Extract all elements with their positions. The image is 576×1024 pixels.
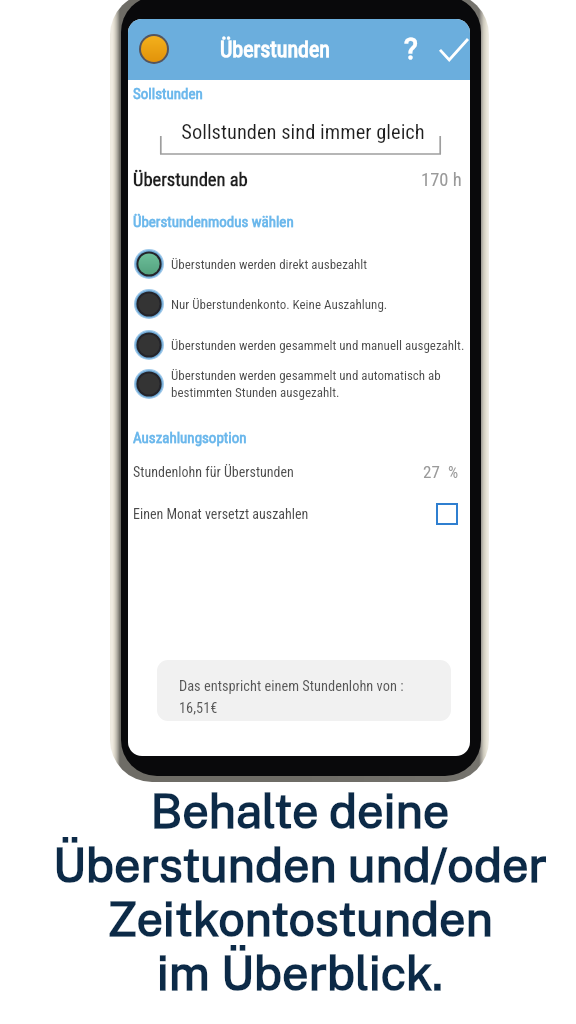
staticText: 170 h	[421, 169, 462, 191]
staticText: Überstunden werden gesammelt und automat…	[171, 368, 441, 401]
staticText: Überstundenmodus wählen	[133, 213, 294, 231]
staticText: Behalte deine Überstunden und/oder Zeitk…	[12, 783, 576, 1000]
button[interactable]: Stundenlohn für Überstunden	[128, 460, 470, 484]
button[interactable]: Save	[435, 30, 470, 68]
button[interactable]: Help	[391, 29, 431, 69]
button[interactable]: Nur Überstundenkonto. Keine Auszahlung.	[128, 287, 470, 321]
button[interactable]: Überstunden werden direkt ausbezahlt	[128, 247, 470, 281]
staticText: Nur Überstundenkonto. Keine Auszahlung.	[171, 297, 388, 312]
staticText: %	[448, 463, 459, 482]
staticText: ?	[404, 32, 418, 66]
staticText: 27	[423, 462, 440, 482]
button[interactable]: Profile	[139, 34, 169, 64]
staticText: Sollstunden	[133, 85, 203, 103]
staticText: Das entspricht einem Stundenlohn von : 1…	[179, 678, 404, 716]
staticText: Überstunden	[220, 37, 330, 63]
button[interactable]: Überstunden werden gesammelt und manuell…	[128, 328, 470, 362]
staticText: Sollstunden sind immer gleich	[160, 120, 446, 144]
staticText: Überstunden ab	[133, 169, 248, 191]
staticText: Auszahlungsoption	[133, 429, 247, 447]
staticText: Einen Monat versetzt auszahlen	[133, 506, 309, 522]
button[interactable]: Einen Monat versetzt auszahlen	[128, 499, 470, 529]
button[interactable]: Überstunden ab	[128, 167, 470, 193]
staticText: Stundenlohn für Überstunden	[133, 464, 294, 480]
staticText: Überstunden werden gesammelt und manuell…	[171, 338, 465, 353]
button[interactable]: Überstunden werden gesammelt und automat…	[128, 367, 470, 401]
button[interactable]: Sollstunden sind immer gleich	[160, 116, 446, 156]
staticText: Überstunden werden direkt ausbezahlt	[171, 257, 368, 272]
